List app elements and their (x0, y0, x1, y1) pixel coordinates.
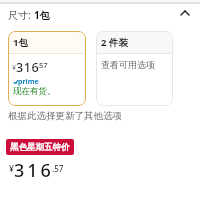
staticText: ¥ (9, 163, 14, 175)
staticText: 现在有货。 (13, 86, 56, 97)
button[interactable]: 1包 (8, 31, 86, 106)
staticText: 1包 (34, 8, 50, 22)
staticText: 黑色星期五特价 (10, 142, 70, 153)
button[interactable]: Collapse size options (174, 4, 196, 26)
staticText: 316 (16, 59, 40, 76)
staticText: 根据此选择更新了其他选项 (8, 110, 122, 122)
staticText: 查看可用选项 (101, 59, 155, 70)
staticText: .57 (37, 60, 48, 70)
staticText: 1包 (13, 36, 28, 49)
button[interactable]: 黑色星期五特价 (6, 139, 74, 155)
staticText: ¥ (12, 63, 17, 73)
staticText: 2 件装 (101, 36, 128, 49)
staticText: 尺寸: (8, 8, 34, 22)
staticText: prime (18, 77, 39, 87)
staticText: 316 (14, 158, 54, 183)
button[interactable]: 2 件装 (96, 31, 173, 106)
staticText: .57 (52, 163, 64, 174)
